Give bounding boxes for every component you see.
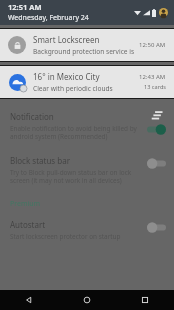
staticText: 16° in Mexico City bbox=[33, 71, 100, 82]
staticText: Notification bbox=[10, 111, 54, 122]
staticText: 12:51 AM bbox=[8, 2, 42, 12]
staticText: Start lockscreen protector on startup bbox=[10, 232, 121, 241]
staticText: Block status bar bbox=[10, 155, 70, 166]
button[interactable]: Block status bar bbox=[0, 155, 174, 185]
staticText: Premium bbox=[10, 199, 41, 209]
button[interactable]: Home bbox=[58, 290, 116, 310]
button[interactable]: Toggle on bbox=[147, 124, 166, 135]
button[interactable]: Toggle off bbox=[147, 158, 166, 169]
staticText: Wednesday, February 24 bbox=[8, 13, 89, 23]
staticText: 12:43 AM bbox=[139, 73, 166, 81]
button[interactable]: Notification bbox=[0, 103, 174, 147]
staticText: Smart Lockscreen Protector bbox=[33, 34, 135, 45]
button[interactable]: Back bbox=[0, 290, 58, 310]
button[interactable]: Autostart bbox=[0, 219, 174, 241]
staticText: 12:50 AM bbox=[139, 41, 166, 49]
staticText: Enable notification to avoid being kille… bbox=[10, 124, 141, 141]
staticText: Clear with periodic clouds bbox=[33, 84, 113, 93]
other: Layers bbox=[151, 111, 163, 120]
staticText: Background protection service is running bbox=[33, 47, 135, 56]
button[interactable]: Recents bbox=[116, 290, 174, 310]
staticText: 13 cards bbox=[144, 83, 166, 91]
button[interactable]: 16° in Mexico City bbox=[0, 66, 174, 98]
button[interactable]: Smart Lockscreen Protector bbox=[0, 29, 174, 61]
staticText: Try to Block pull-down status bar on loc… bbox=[10, 168, 141, 185]
staticText: Autostart bbox=[10, 219, 46, 230]
button[interactable]: Toggle off bbox=[147, 222, 166, 233]
